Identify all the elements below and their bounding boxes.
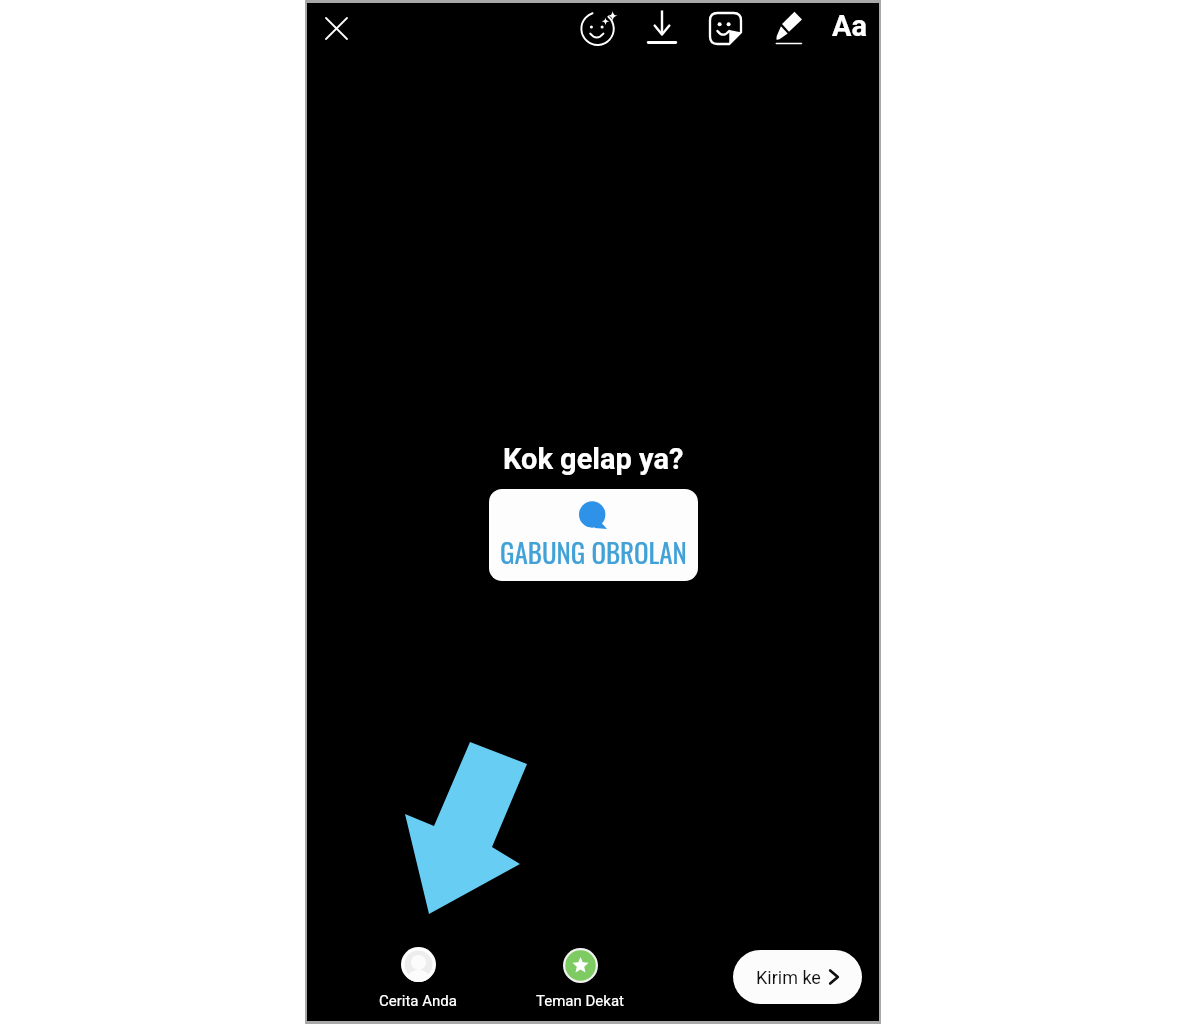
staticText: Kirim ke <box>756 967 821 988</box>
button[interactable]: Text <box>828 4 872 48</box>
button[interactable]: Stickers <box>703 6 747 50</box>
staticText: Kok gelap ya? <box>503 442 684 476</box>
staticText: Aa <box>832 9 868 43</box>
button[interactable]: Effects <box>578 6 622 50</box>
button[interactable]: Cerita Anda <box>382 947 453 1010</box>
button[interactable]: Teman Dekat <box>537 948 622 1010</box>
staticText: GABUNG OBROLAN <box>500 532 687 572</box>
staticText: Cerita Anda <box>379 992 457 1010</box>
button[interactable]: Kirim ke <box>733 950 862 1004</box>
button[interactable]: Save <box>640 5 684 49</box>
button[interactable]: Draw <box>766 6 810 50</box>
button[interactable]: GABUNG OBROLAN <box>489 489 698 581</box>
staticText: Teman Dekat <box>536 992 624 1010</box>
button[interactable]: Close <box>314 6 358 50</box>
